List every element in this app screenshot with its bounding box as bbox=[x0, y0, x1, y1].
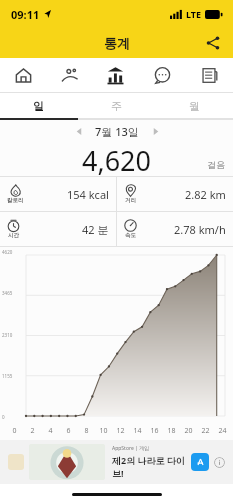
staticText: 14 bbox=[133, 426, 142, 436]
staticText: 3465 bbox=[2, 290, 13, 296]
button[interactable]: 속도 bbox=[117, 212, 233, 246]
button[interactable]: Ad info bbox=[214, 457, 225, 468]
staticText: 월 bbox=[189, 99, 200, 113]
staticText: 7월 13일 bbox=[95, 124, 139, 139]
staticText: 2310 bbox=[2, 332, 13, 338]
staticText: 4620 bbox=[2, 249, 13, 255]
staticText: 4 bbox=[48, 426, 53, 436]
staticText: 22 bbox=[201, 426, 210, 436]
button[interactable]: 거리 bbox=[117, 177, 233, 211]
staticText: 154 kcal bbox=[67, 187, 109, 202]
staticText: 4,620 bbox=[82, 142, 152, 176]
staticText: 칼로리 bbox=[7, 197, 24, 204]
staticText: 주 bbox=[111, 99, 122, 113]
staticText: 1155 bbox=[2, 373, 13, 379]
button[interactable]: 칼로리 bbox=[0, 177, 116, 211]
staticText: 2 bbox=[30, 426, 35, 436]
staticText: 속도 bbox=[125, 232, 136, 239]
button[interactable]: Chat bbox=[139, 58, 186, 92]
staticText: 42 분 bbox=[82, 222, 109, 237]
button[interactable]: Share bbox=[199, 29, 227, 57]
staticText: 통계 bbox=[104, 35, 130, 51]
staticText: 09:11 bbox=[11, 7, 40, 22]
button[interactable]: Home bbox=[0, 58, 46, 92]
button[interactable]: AppStore | 게임 bbox=[0, 440, 233, 484]
button[interactable]: News bbox=[186, 58, 233, 92]
staticText: 2.82 km bbox=[185, 187, 226, 202]
staticText: 16 bbox=[150, 426, 159, 436]
staticText: AppStore | 게임 bbox=[112, 445, 150, 452]
button[interactable]: 일 bbox=[0, 93, 77, 118]
button[interactable]: Next day bbox=[145, 121, 165, 141]
button[interactable]: 월 bbox=[155, 93, 233, 118]
button[interactable]: 시간 bbox=[0, 212, 116, 246]
staticText: 0 bbox=[2, 414, 5, 420]
staticText: 10 bbox=[99, 426, 108, 436]
button[interactable]: 주 bbox=[77, 93, 155, 118]
button[interactable]: Previous day bbox=[69, 121, 89, 141]
staticText: 20 bbox=[184, 426, 193, 436]
staticText: 18 bbox=[167, 426, 176, 436]
staticText: 거리 bbox=[125, 197, 136, 204]
staticText: 12 bbox=[116, 426, 125, 436]
staticText: 2.78 km/h bbox=[174, 222, 226, 237]
staticText: 0 bbox=[12, 426, 17, 436]
button[interactable]: Friends bbox=[46, 58, 92, 92]
staticText: 24 bbox=[218, 426, 227, 436]
staticText: 6 bbox=[66, 426, 71, 436]
staticText: 8 bbox=[84, 426, 89, 436]
button[interactable]: Stats bbox=[92, 58, 139, 92]
staticText: LTE bbox=[186, 8, 202, 20]
staticText: 일 bbox=[33, 99, 44, 113]
staticText: 시간 bbox=[8, 232, 19, 239]
button[interactable]: Open App Store bbox=[191, 453, 209, 471]
staticText: 걸음 bbox=[207, 159, 225, 170]
staticText: 제2의 나라로 다이브! bbox=[112, 454, 191, 479]
